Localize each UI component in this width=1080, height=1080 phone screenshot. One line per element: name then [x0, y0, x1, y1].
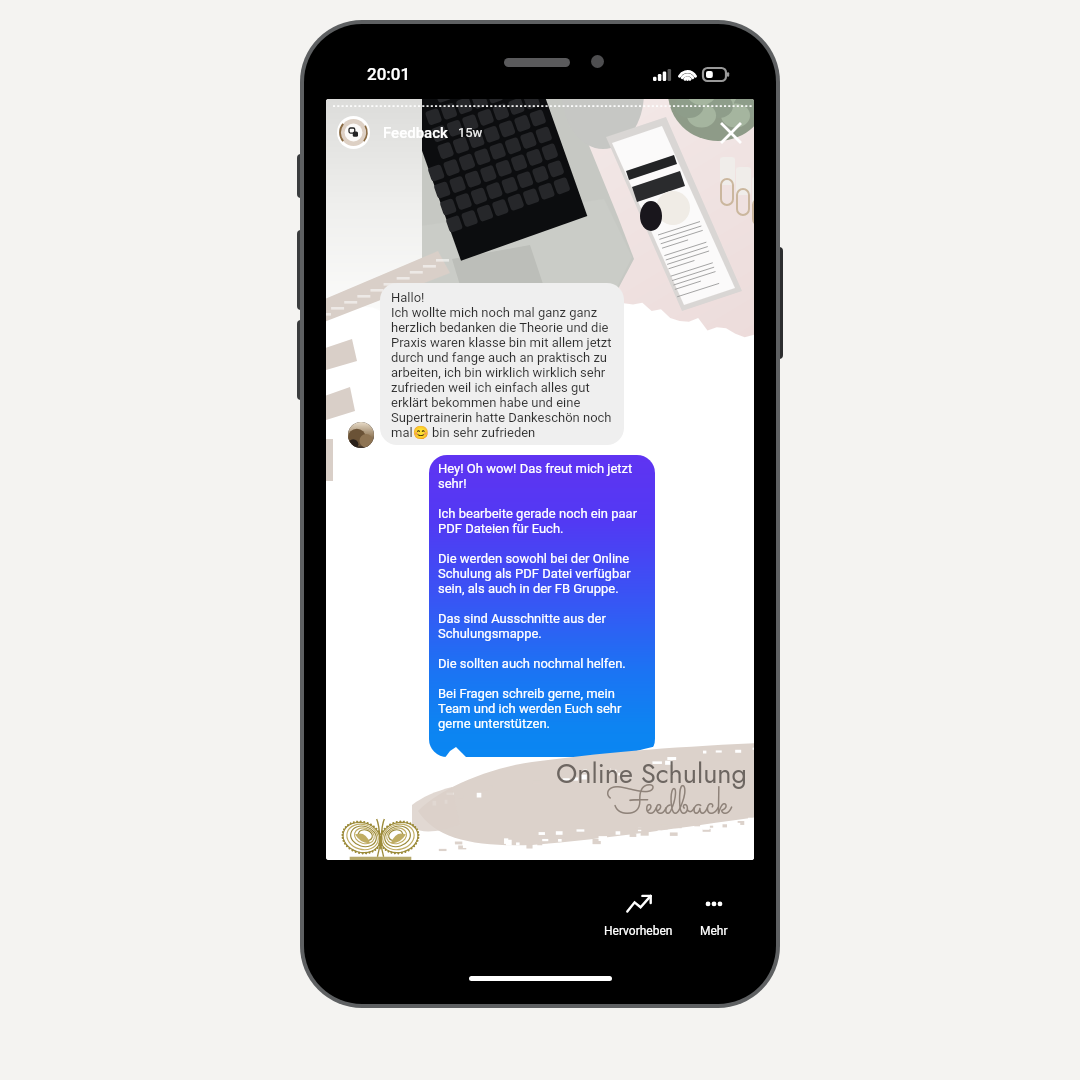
staticText: Hervorheben	[604, 924, 673, 938]
button[interactable]: Profile photo	[337, 116, 370, 149]
staticText: 15w	[458, 125, 483, 140]
staticText: Hallo! Ich wollte mich noch mal ganz gan…	[391, 290, 616, 440]
staticText: Feedback	[607, 778, 731, 833]
staticText: 20:01	[367, 64, 411, 84]
staticText: Hey! Oh wow! Das freut mich jetzt sehr! …	[438, 461, 645, 731]
button[interactable]: Close story	[716, 118, 746, 148]
staticText: Mehr	[700, 924, 728, 938]
staticText: Feedback	[383, 124, 448, 142]
button[interactable]: Mehr	[679, 894, 749, 938]
staticText: Online Schulung	[556, 754, 747, 793]
button[interactable]: Hervorheben	[582, 894, 695, 938]
